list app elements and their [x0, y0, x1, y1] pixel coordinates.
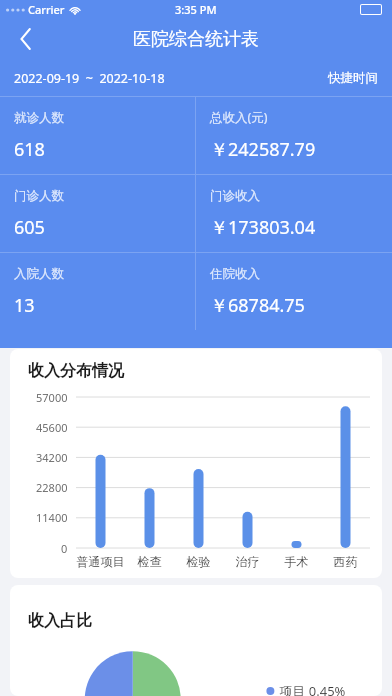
- staticText: 618: [14, 137, 45, 162]
- staticText: 605: [14, 215, 45, 240]
- staticText: 3:35 PM: [175, 2, 217, 17]
- staticText: 医院综合统计表: [133, 28, 259, 51]
- button[interactable]: 门诊人数: [0, 175, 195, 252]
- staticText: 住院收入: [210, 266, 260, 282]
- button[interactable]: 总收入(元): [196, 97, 392, 174]
- button[interactable]: Back: [4, 18, 48, 60]
- staticText: 13: [14, 293, 35, 318]
- staticText: 2022-09-19 ~ 2022-10-18: [14, 70, 165, 87]
- button[interactable]: 门诊收入: [196, 175, 392, 252]
- staticText: 总收入(元): [210, 109, 268, 126]
- staticText: 收入占比: [28, 611, 92, 631]
- button[interactable]: 2022-09-19 ~ 2022-10-18: [14, 70, 165, 87]
- button[interactable]: 快捷时间: [328, 70, 378, 86]
- staticText: 快捷时间: [328, 70, 378, 86]
- staticText: ￥173803.04: [210, 215, 316, 240]
- staticText: 入院人数: [14, 266, 64, 282]
- staticText: 门诊收入: [210, 188, 260, 204]
- button[interactable]: 就诊人数: [0, 97, 195, 174]
- staticText: ￥242587.79: [210, 137, 316, 162]
- staticText: Carrier: [28, 2, 65, 17]
- staticText: 收入分布情况: [28, 361, 124, 381]
- button[interactable]: 住院收入: [196, 253, 392, 330]
- button[interactable]: 入院人数: [0, 253, 195, 330]
- staticText: 就诊人数: [14, 110, 64, 126]
- staticText: ￥68784.75: [210, 293, 305, 318]
- staticText: 门诊人数: [14, 188, 64, 204]
